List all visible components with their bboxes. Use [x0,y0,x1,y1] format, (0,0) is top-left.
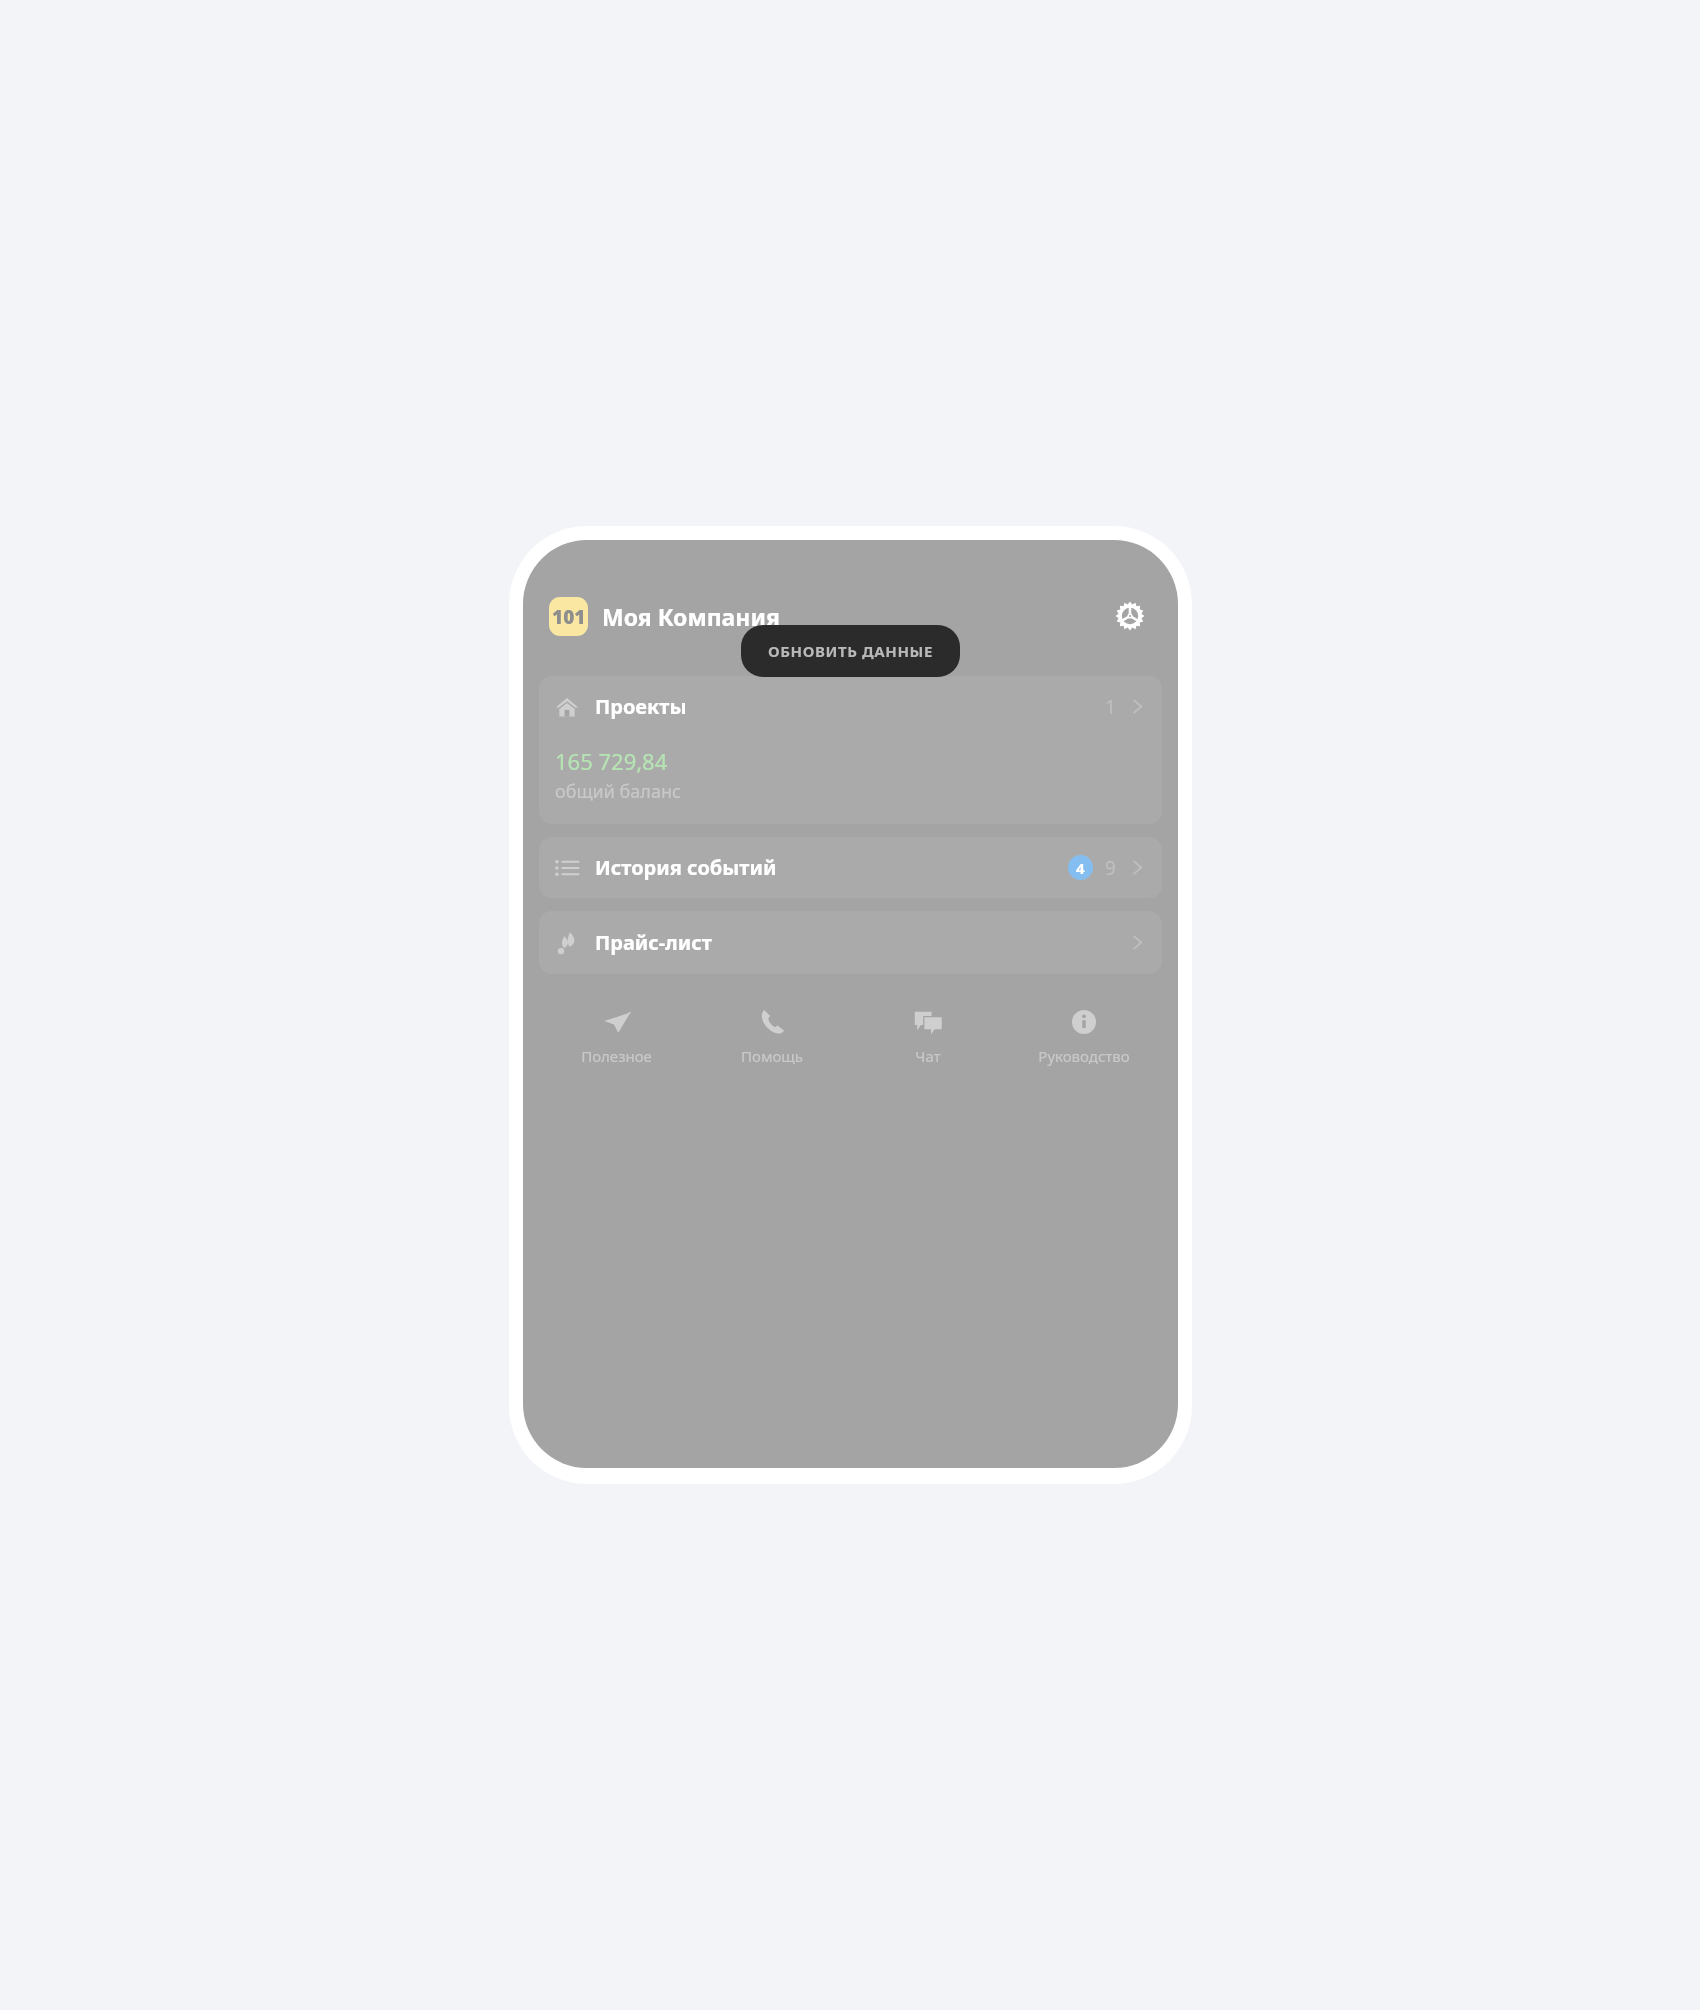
staticText: 101 [552,604,586,630]
staticText: История событий [595,854,777,881]
staticText: общий баланс [555,779,681,804]
staticText: Полезное [581,1046,652,1066]
button[interactable]: Полезное [539,1003,694,1070]
staticText: Руководство [1038,1046,1130,1066]
button[interactable]: ОБНОВИТЬ ДАННЫЕ [741,625,960,677]
staticText: Моя Компания [602,601,780,632]
staticText: Прайс-лист [595,929,712,956]
button[interactable]: Помощь [694,1003,850,1070]
button[interactable]: Прайс-лист [539,911,1162,974]
staticText: 1 [1105,694,1116,720]
staticText: 4 [1076,858,1085,878]
button[interactable]: Проекты [539,676,1162,824]
staticText: 165 729,84 [555,746,668,776]
staticText: Помощь [741,1046,803,1066]
staticText: Чат [915,1046,941,1066]
button[interactable]: История событий [539,837,1162,898]
staticText: 9 [1105,855,1116,881]
button[interactable]: Settings [1108,594,1152,638]
button[interactable]: Чат [850,1003,1006,1070]
button[interactable]: Руководство [1006,1003,1162,1070]
button[interactable]: 101 [549,597,588,636]
staticText: Проекты [595,693,687,720]
staticText: ОБНОВИТЬ ДАННЫЕ [768,641,933,661]
